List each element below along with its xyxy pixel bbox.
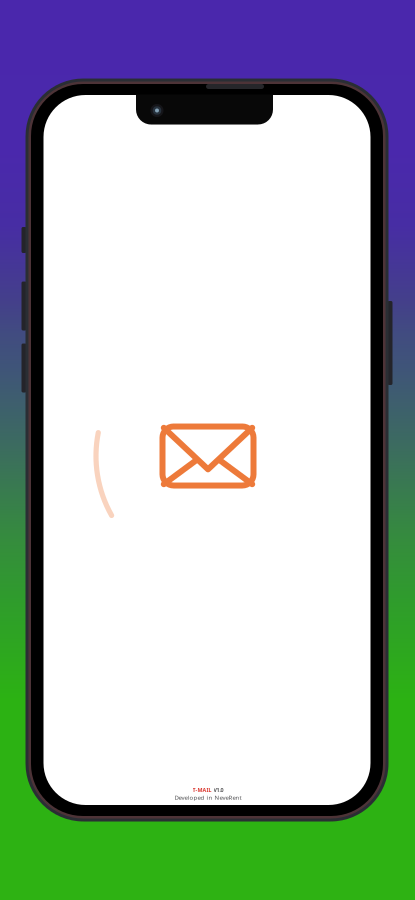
staticText: Developed in NeveRent <box>174 793 241 802</box>
staticText: T-MAIL <box>192 786 211 793</box>
staticText: V1.0 <box>213 786 223 793</box>
